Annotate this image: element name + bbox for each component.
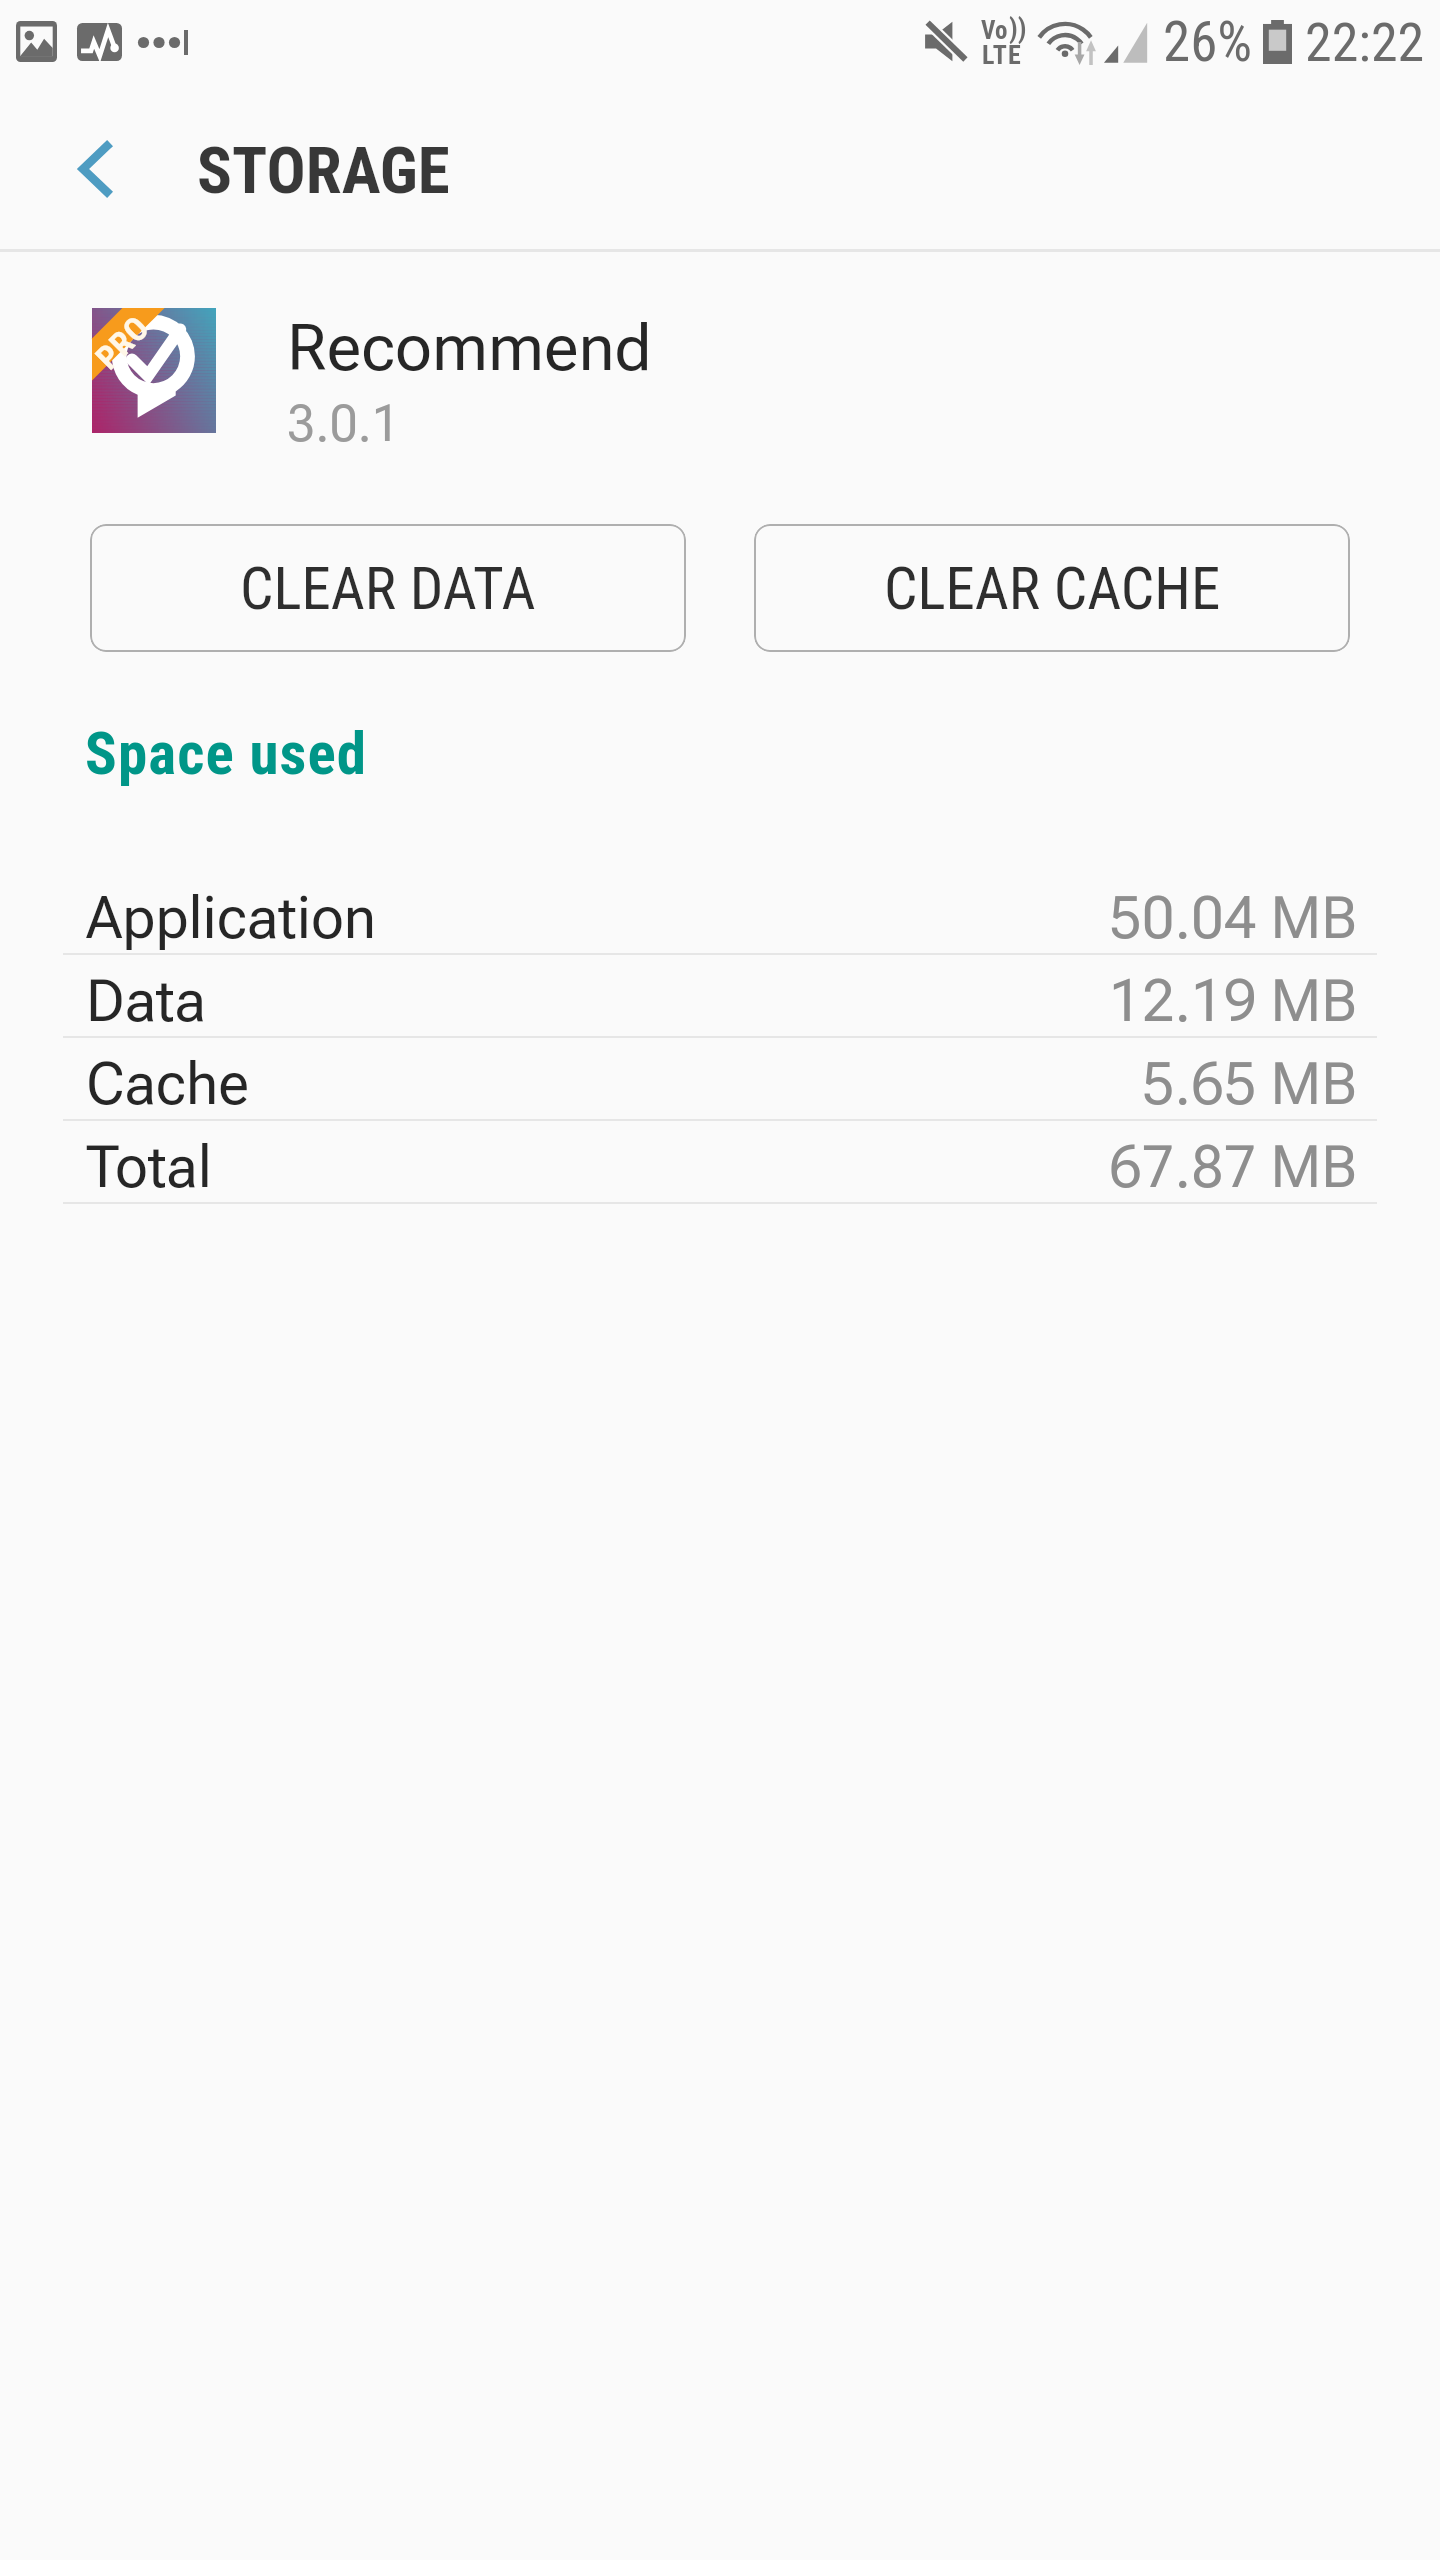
staticText: PRO [88,308,157,377]
staticText: Vo [981,16,1008,45]
staticText: Application [86,884,377,952]
staticText: 5.65 MB [1141,1050,1357,1118]
staticText: Data [86,967,206,1035]
button[interactable]: Total [63,1121,1377,1202]
button[interactable]: Application [63,872,1377,953]
staticText: 12.19 MB [1109,967,1357,1035]
staticText: CLEAR CACHE [884,554,1221,623]
button[interactable]: Navigate up [18,106,172,232]
staticText: Total [86,1133,212,1201]
staticText: 67.87 MB [1109,1133,1357,1201]
staticText: Space used [85,719,368,788]
staticText: 26% [1163,10,1253,74]
button[interactable]: CLEAR CACHE [754,524,1350,652]
staticText: Recommend [287,310,652,386]
button[interactable]: Data [63,955,1377,1036]
staticText: LTE [982,40,1022,70]
staticText: CLEAR DATA [240,554,536,623]
staticText: 3.0.1 [287,395,400,454]
button[interactable]: CLEAR DATA [90,524,686,652]
staticText: 50.04 MB [1109,884,1357,952]
staticText: STORAGE [197,133,450,209]
staticText: Cache [86,1050,250,1118]
button[interactable]: Cache [63,1038,1377,1119]
staticText: )) [1009,13,1027,45]
staticText: 22:22 [1305,11,1425,74]
